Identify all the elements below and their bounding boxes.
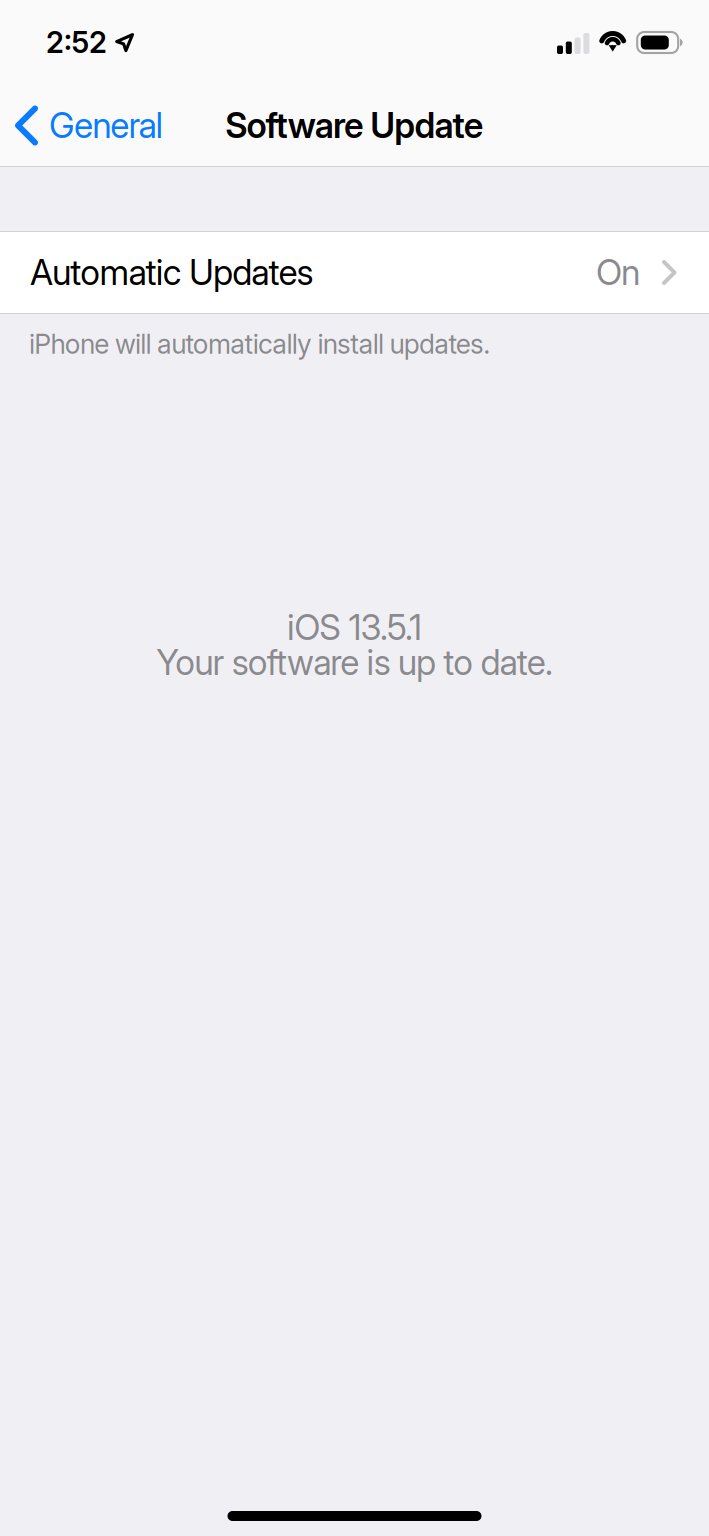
staticText: Automatic Updates [30,251,314,293]
staticText: Software Update [225,104,484,146]
staticText: On [596,251,640,293]
staticText: 2:52 [46,24,107,60]
staticText: Your software is up to date. [156,641,553,683]
staticText: iPhone will automatically install update… [29,328,490,360]
button[interactable]: Automatic Updates [0,231,709,314]
staticText: General [49,104,164,146]
button[interactable]: General [0,84,180,166]
staticText: iOS 13.5.1 [287,606,422,648]
